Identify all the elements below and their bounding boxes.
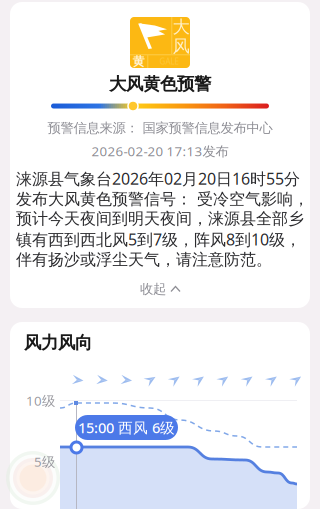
staticText: 风	[172, 35, 189, 57]
staticText: GALE	[159, 56, 178, 67]
staticText: 收起	[140, 281, 166, 297]
staticText: 风力风向	[24, 332, 92, 353]
staticText: 2026-02-20 17:13发布	[91, 142, 228, 160]
staticText: 大风黄色预警	[109, 73, 211, 95]
staticText: 黄	[132, 54, 144, 69]
staticText: 预警信息来源： 国家预警信息发布中心	[47, 120, 272, 136]
button[interactable]: 收起	[10, 275, 310, 303]
staticText: 15:00 西风 6级	[78, 418, 175, 437]
staticText: 大	[172, 16, 189, 37]
staticText: 10级	[26, 392, 55, 409]
staticText: 涞源县气象台2026年02月20日16时55分发布大风黄色预警信号： 受冷空气影…	[16, 168, 309, 269]
staticText: 5级	[34, 453, 55, 470]
